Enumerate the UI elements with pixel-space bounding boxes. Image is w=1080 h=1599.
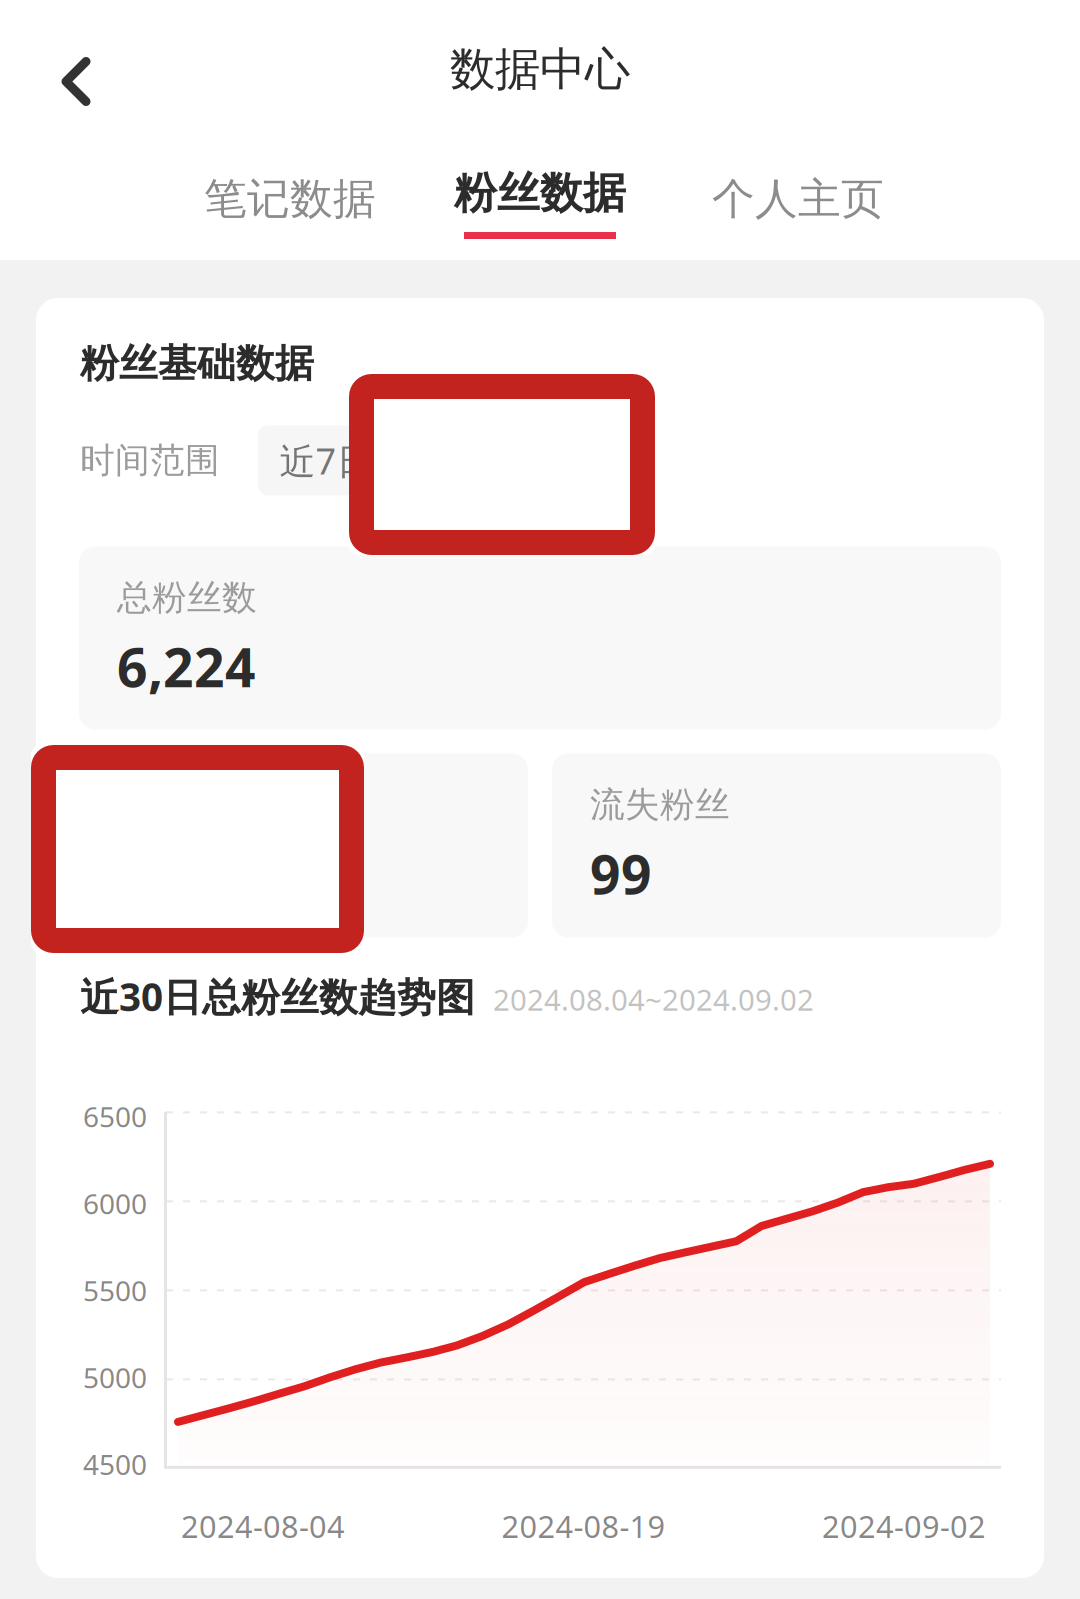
staticText: 近30日总粉丝数趋势图	[80, 970, 475, 1022]
staticText: 2024-08-19	[501, 1506, 665, 1546]
staticText: 数据中心	[450, 42, 630, 97]
staticText: 总粉丝数	[117, 576, 257, 619]
staticText: 2024-09-02	[822, 1506, 986, 1546]
staticText: 4500	[83, 1446, 147, 1483]
button[interactable]: Back	[0, 0, 135, 139]
staticText: 粉丝基础数据	[80, 340, 314, 387]
staticText: 5500	[83, 1272, 147, 1309]
staticText: 6,224	[117, 631, 256, 702]
staticText: 6500	[83, 1098, 147, 1135]
button[interactable]: 近7日	[258, 425, 394, 495]
button[interactable]: 个人主页	[673, 139, 923, 259]
button[interactable]: 笔记数据	[165, 139, 415, 259]
staticText: 近7日	[279, 437, 372, 484]
staticText: 2024-08-04	[181, 1506, 345, 1546]
staticText: 粉丝数据	[454, 167, 626, 219]
button[interactable]: 粉丝数据	[415, 139, 665, 259]
staticText: 流失粉丝	[590, 783, 730, 826]
staticText: 时间范围	[80, 439, 220, 482]
staticText: 5000	[83, 1359, 147, 1396]
staticText: 6000	[83, 1185, 147, 1222]
staticText: 笔记数据	[204, 173, 376, 225]
staticText: 99	[590, 838, 652, 909]
staticText: 个人主页	[712, 173, 884, 225]
staticText: 2024.08.04~2024.09.02	[493, 980, 814, 1019]
